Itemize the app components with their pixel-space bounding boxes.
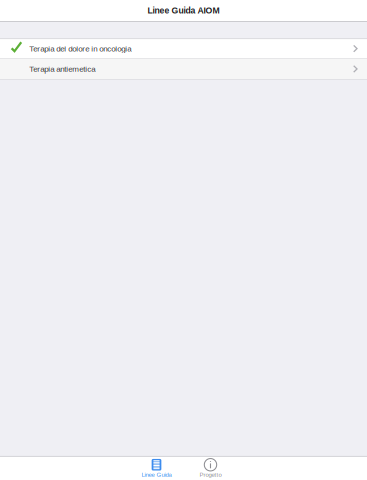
button[interactable]: Terapia antiemetica: [0, 59, 367, 79]
staticText: Linee Guida AIOM: [147, 6, 219, 15]
staticText: Linee Guida: [141, 471, 171, 478]
button[interactable]: Terapia del dolore in oncologia: [0, 39, 367, 58]
staticText: Terapia del dolore in oncologia: [29, 44, 131, 53]
button[interactable]: Linee Guida: [129, 457, 183, 480]
staticText: Terapia antiemetica: [29, 65, 95, 73]
button[interactable]: Progetto: [183, 457, 237, 480]
staticText: Progetto: [199, 471, 221, 478]
